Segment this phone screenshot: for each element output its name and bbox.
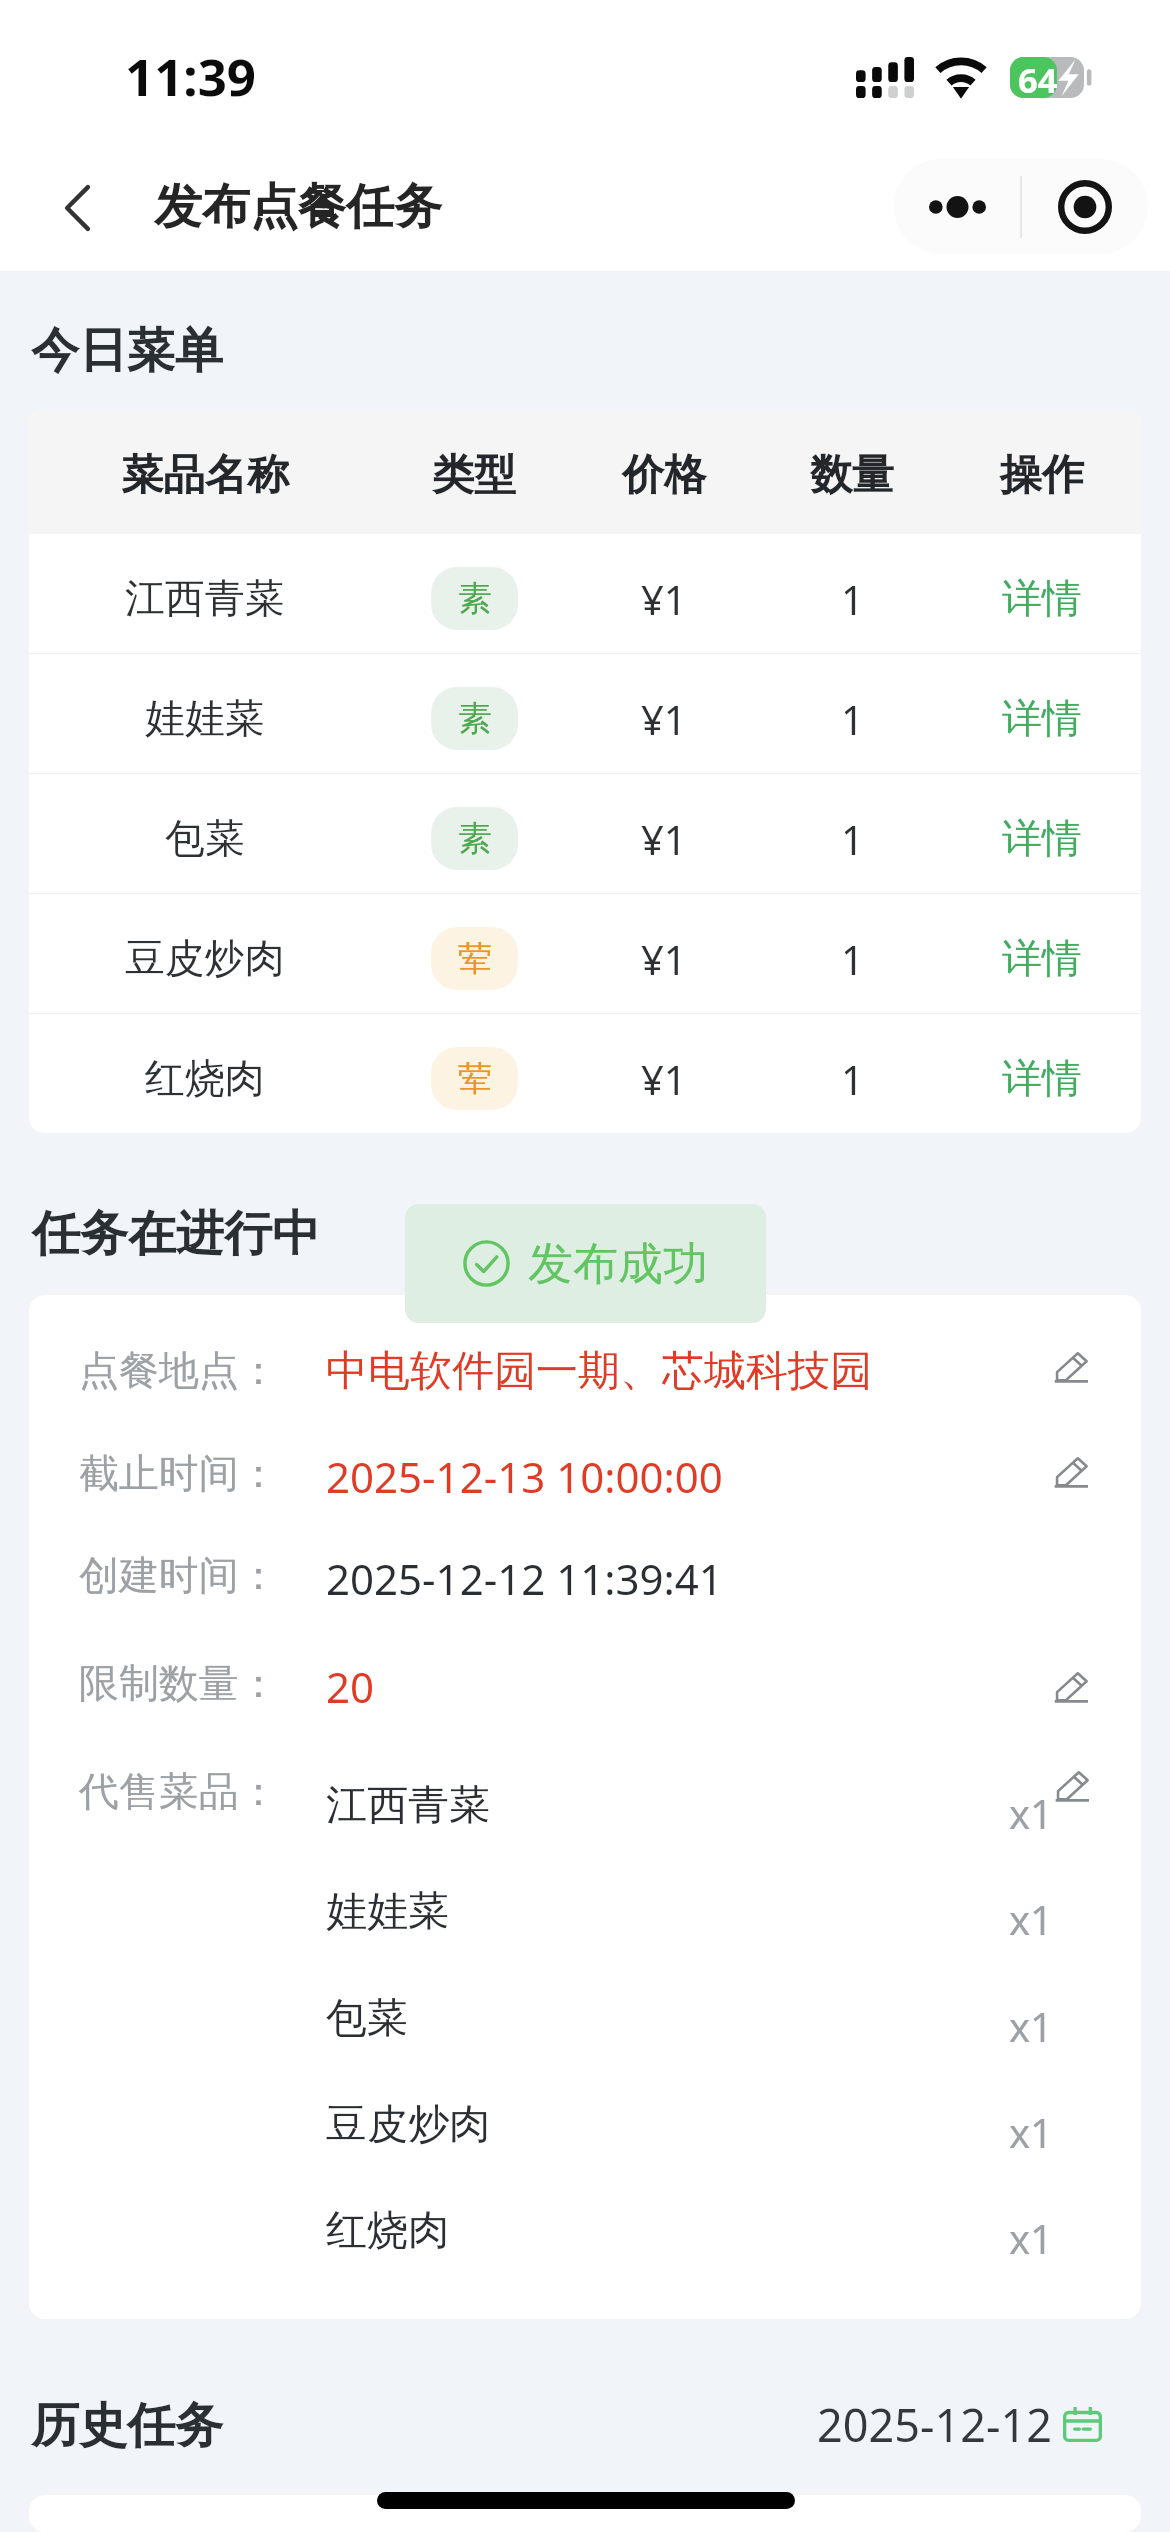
staticText: x1 bbox=[1009, 2105, 1053, 2159]
button[interactable]: Edit bbox=[1054, 1672, 1088, 1703]
staticText: 1 bbox=[841, 692, 864, 746]
staticText: 代售菜品： bbox=[79, 1767, 279, 1817]
staticText: 详情 bbox=[1002, 694, 1082, 744]
staticText: 详情 bbox=[1002, 574, 1082, 624]
staticText: 数量 bbox=[810, 449, 894, 502]
button[interactable]: 详情 bbox=[943, 1014, 1141, 1133]
button[interactable]: Close bbox=[1022, 159, 1148, 254]
staticText: 限制数量： bbox=[79, 1659, 279, 1709]
staticText: 2025-12-12 11:39:41 bbox=[326, 1550, 723, 1607]
staticText: 发布成功 bbox=[528, 1236, 708, 1293]
staticText: 截止时间： bbox=[79, 1449, 279, 1499]
staticText: 64 bbox=[1018, 56, 1058, 97]
staticText: 创建时间： bbox=[79, 1551, 279, 1601]
button[interactable]: Back bbox=[22, 163, 132, 253]
staticText: ¥1 bbox=[641, 932, 687, 986]
button[interactable]: 详情 bbox=[943, 654, 1141, 773]
staticText: 1 bbox=[841, 932, 864, 986]
staticText: 素 bbox=[458, 577, 492, 620]
staticText: 娃娃菜 bbox=[145, 694, 265, 744]
button[interactable]: 2025-12-12 bbox=[805, 2375, 1105, 2475]
staticText: 红烧肉 bbox=[145, 1054, 265, 1104]
staticText: 类型 bbox=[432, 449, 516, 502]
button[interactable]: Edit dishes bbox=[1055, 1771, 1089, 1802]
staticText: 详情 bbox=[1002, 1054, 1082, 1104]
staticText: 包菜 bbox=[165, 814, 245, 864]
staticText: 娃娃菜 bbox=[326, 1885, 450, 1937]
staticText: x1 bbox=[1009, 1786, 1053, 1840]
staticText: x1 bbox=[1009, 1892, 1053, 1946]
staticText: 红烧肉 bbox=[326, 2204, 450, 2256]
staticText: 豆皮炒肉 bbox=[326, 2098, 491, 2150]
staticText: ¥1 bbox=[641, 1052, 687, 1106]
staticText: 任务在进行中 bbox=[32, 1204, 320, 1264]
staticText: 操作 bbox=[1000, 449, 1084, 502]
staticText: ¥1 bbox=[641, 692, 687, 746]
button[interactable]: More bbox=[894, 159, 1020, 254]
staticText: 今日菜单 bbox=[31, 321, 223, 381]
staticText: 20 bbox=[326, 1658, 375, 1715]
staticText: ¥1 bbox=[641, 812, 687, 866]
staticText: 2025-12-13 10:00:00 bbox=[326, 1448, 723, 1505]
staticText: 2025-12-12 bbox=[817, 2394, 1052, 2455]
staticText: 发布点餐任务 bbox=[154, 177, 442, 237]
staticText: 点餐地点： bbox=[79, 1346, 279, 1396]
staticText: 荤 bbox=[458, 937, 492, 980]
staticText: 1 bbox=[841, 572, 864, 626]
staticText: 历史任务 bbox=[31, 2396, 223, 2456]
staticText: 素 bbox=[458, 817, 492, 860]
staticText: 江西青菜 bbox=[326, 1779, 491, 1831]
staticText: x1 bbox=[1009, 2211, 1053, 2265]
staticText: 1 bbox=[841, 812, 864, 866]
button[interactable]: Edit bbox=[1054, 1352, 1088, 1383]
staticText: 江西青菜 bbox=[125, 574, 285, 624]
button[interactable]: Edit bbox=[1054, 1457, 1088, 1488]
button[interactable]: 详情 bbox=[943, 534, 1141, 653]
staticText: 豆皮炒肉 bbox=[125, 934, 285, 984]
button[interactable]: 详情 bbox=[943, 894, 1141, 1013]
staticText: 1 bbox=[841, 1052, 864, 1106]
staticText: 素 bbox=[458, 697, 492, 740]
staticText: 11:39 bbox=[125, 41, 257, 110]
staticText: 价格 bbox=[622, 449, 706, 502]
staticText: x1 bbox=[1009, 1999, 1053, 2053]
staticText: 菜品名称 bbox=[121, 449, 289, 502]
button[interactable]: 详情 bbox=[943, 774, 1141, 893]
staticText: 荤 bbox=[458, 1057, 492, 1100]
staticText: ¥1 bbox=[641, 572, 687, 626]
staticText: 详情 bbox=[1002, 934, 1082, 984]
staticText: 包菜 bbox=[326, 1992, 409, 2044]
staticText: 详情 bbox=[1002, 814, 1082, 864]
staticText: 中电软件园一期、芯城科技园 bbox=[326, 1345, 872, 1398]
